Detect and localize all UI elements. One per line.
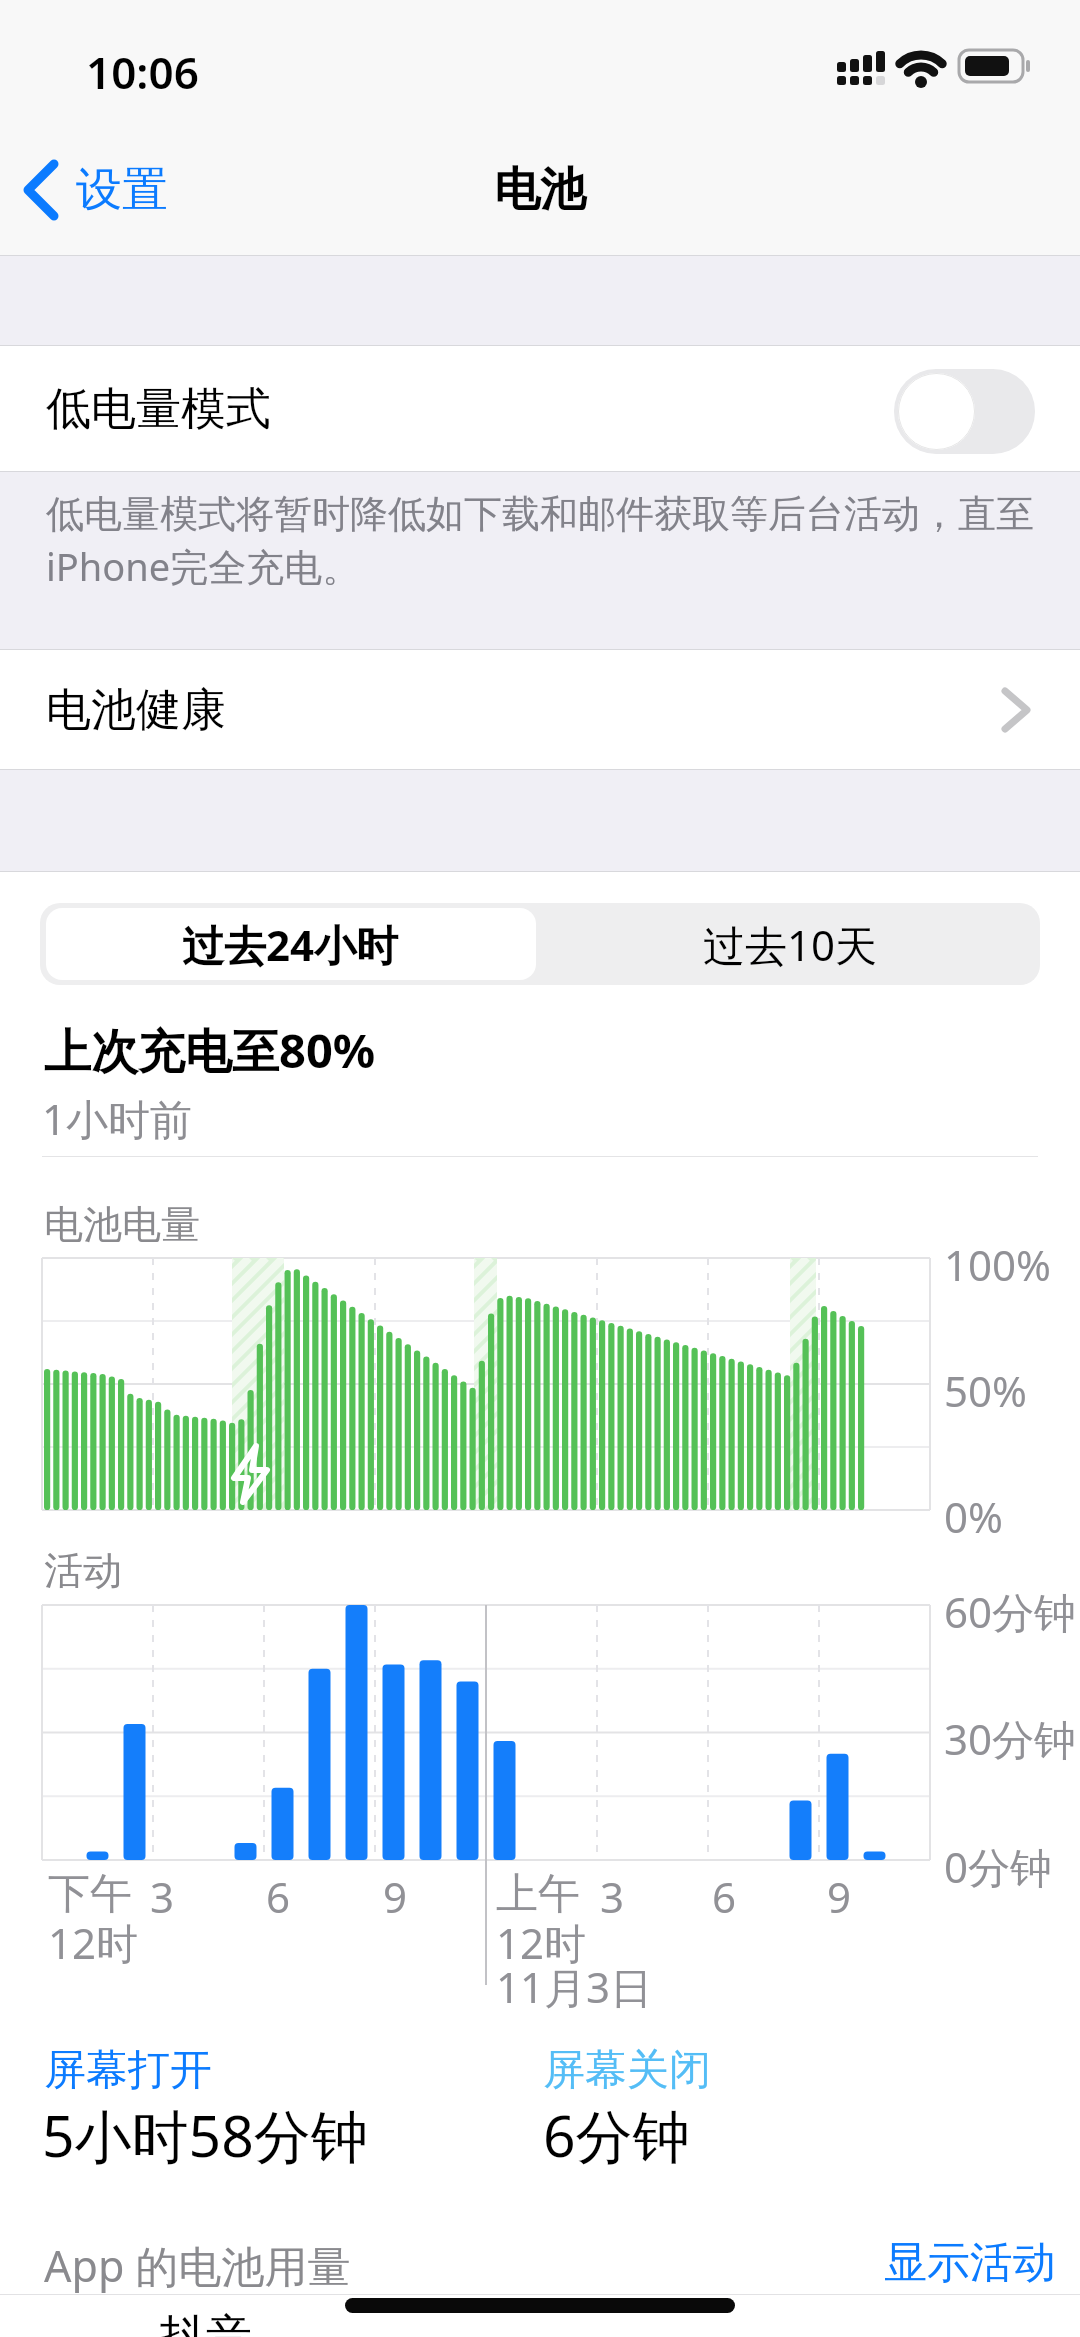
staticText: App 的电池用量 (44, 2236, 351, 2295)
staticText: 电池电量 (44, 1200, 200, 1249)
staticText: 屏幕关闭 (543, 2044, 711, 2097)
staticText: 上午 (496, 1868, 580, 1921)
button[interactable]: 电池健康 (0, 650, 1080, 770)
staticText: 过去10天 (703, 916, 878, 973)
staticText: 30分钟 (944, 1710, 1077, 1767)
staticText: 10:06 (86, 42, 199, 102)
staticText: 电池健康 (46, 682, 226, 739)
button[interactable]: 过去24小时 (40, 903, 540, 985)
staticText: 设置 (76, 161, 168, 219)
button[interactable]: 设置 (16, 150, 196, 230)
staticText: 1小时前 (42, 1090, 193, 1147)
staticText: 屏幕打开 (44, 2044, 212, 2097)
staticText: 活动 (44, 1546, 122, 1595)
staticText: 上次充电至80% (44, 1018, 376, 1082)
staticText: 5小时58分钟 (42, 2096, 368, 2174)
staticText: 0分钟 (944, 1838, 1053, 1895)
staticText: 9 (383, 1868, 408, 1925)
staticText: 9 (827, 1868, 852, 1925)
staticText: 低电量模式 (46, 381, 271, 438)
staticText: 0% (944, 1488, 1003, 1545)
staticText: 低电量模式将暂时降低如下载和邮件获取等后台活动，直至 iPhone完全充电。 (46, 490, 1034, 592)
staticText: 6分钟 (543, 2096, 690, 2174)
staticText: 12时 (496, 1914, 587, 1971)
button[interactable]: 过去10天 (540, 903, 1040, 985)
staticText: 3 (150, 1868, 175, 1925)
button[interactable] (894, 369, 1035, 454)
staticText: 6 (712, 1868, 737, 1925)
staticText: 3 (600, 1868, 625, 1925)
staticText: 电池 (494, 161, 586, 219)
staticText: 12时 (48, 1914, 139, 1971)
staticText: 下午 (48, 1868, 132, 1921)
staticText: 抖音 (160, 2308, 252, 2337)
staticText: 11月3日 (496, 1958, 653, 2015)
staticText: 6 (266, 1868, 291, 1925)
staticText: 60分钟 (944, 1583, 1077, 1640)
staticText: 50% (944, 1362, 1027, 1419)
staticText: 100% (944, 1236, 1051, 1293)
staticText: 过去24小时 (182, 916, 399, 973)
